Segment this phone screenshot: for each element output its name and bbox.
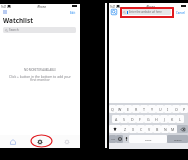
staticText: E [127, 107, 129, 112]
staticText: M [171, 127, 175, 132]
button[interactable]: A [112, 115, 120, 123]
staticText: Watchlist [3, 16, 33, 25]
staticText: Edit [70, 11, 76, 15]
button[interactable]: Home [0, 135, 26, 148]
button[interactable]: Cancel [175, 10, 186, 16]
button[interactable]: E [124, 105, 132, 113]
staticText: Click + button in the bottom to add your… [8, 74, 72, 82]
button[interactable]: Backspace [177, 125, 188, 133]
staticText: R [135, 107, 138, 112]
staticText: S [123, 117, 125, 122]
button[interactable]: I [164, 105, 172, 113]
button[interactable]: D [128, 115, 136, 123]
button[interactable]: Edit [69, 10, 77, 16]
button[interactable]: Dictate [123, 135, 129, 143]
staticText: Search [174, 138, 182, 141]
button[interactable]: S [120, 115, 128, 123]
button[interactable]: space [129, 135, 167, 143]
button[interactable]: Z [121, 125, 129, 133]
staticText: J [164, 117, 165, 122]
staticText: 123 [111, 138, 115, 141]
staticText: O [175, 107, 178, 112]
button[interactable]: Search [167, 135, 188, 143]
staticText: Cancel [176, 11, 185, 15]
staticText: Q [111, 107, 114, 112]
button[interactable]: O [172, 105, 180, 113]
staticText: P [183, 107, 186, 112]
staticText: Y [151, 107, 154, 112]
button[interactable]: X [129, 125, 137, 133]
staticText: A [115, 117, 118, 122]
staticText: U [159, 107, 162, 112]
button[interactable]: Search [3, 27, 76, 33]
button[interactable]: Y [148, 105, 156, 113]
staticText: C [140, 127, 143, 132]
staticText: X [132, 127, 135, 132]
button[interactable]: C [137, 125, 145, 133]
staticText: K [171, 117, 174, 122]
staticText: I [167, 107, 169, 112]
staticText: W [118, 107, 122, 112]
staticText: 9:41 AM [110, 5, 121, 9]
button[interactable]: P [180, 105, 188, 113]
button[interactable]: Enter the website url here [122, 9, 171, 15]
button[interactable]: H [152, 115, 160, 123]
staticText: 9:41 AM [1, 5, 12, 9]
button[interactable]: R [132, 105, 140, 113]
staticText: T [143, 107, 145, 112]
staticText: G [147, 117, 150, 122]
button[interactable]: M [169, 125, 177, 133]
staticText: H [155, 117, 158, 122]
staticText: D [131, 117, 134, 122]
staticText: B [156, 127, 159, 132]
button[interactable]: F [136, 115, 144, 123]
button[interactable]: J [160, 115, 168, 123]
staticText: Enter the website url here [129, 10, 162, 14]
button[interactable]: T [140, 105, 148, 113]
staticText: L [179, 117, 181, 122]
staticText: iPhone [37, 5, 46, 9]
button[interactable]: N [161, 125, 169, 133]
staticText: space [145, 138, 152, 141]
button[interactable]: G [144, 115, 152, 123]
staticText: V [148, 127, 151, 132]
button[interactable]: Add monitor [26, 135, 53, 148]
staticText: Search [9, 28, 19, 32]
button[interactable]: B [153, 125, 161, 133]
button[interactable]: Emoji [116, 135, 123, 143]
staticText: iPhone [146, 5, 155, 9]
button[interactable]: Q [109, 105, 116, 113]
button[interactable]: L [176, 115, 184, 123]
staticText: F [139, 117, 141, 122]
staticText: N [164, 127, 167, 132]
button[interactable]: Search tabs [111, 9, 117, 15]
button[interactable]: U [156, 105, 164, 113]
staticText: NO MONITOR AVAILABLE [8, 68, 72, 72]
button[interactable]: K [168, 115, 176, 123]
button[interactable]: 123 [109, 135, 116, 143]
button[interactable]: W [116, 105, 124, 113]
staticText: Z [124, 127, 127, 132]
button[interactable]: Shift [109, 125, 121, 133]
button[interactable]: Settings [53, 135, 80, 148]
button[interactable]: V [145, 125, 153, 133]
